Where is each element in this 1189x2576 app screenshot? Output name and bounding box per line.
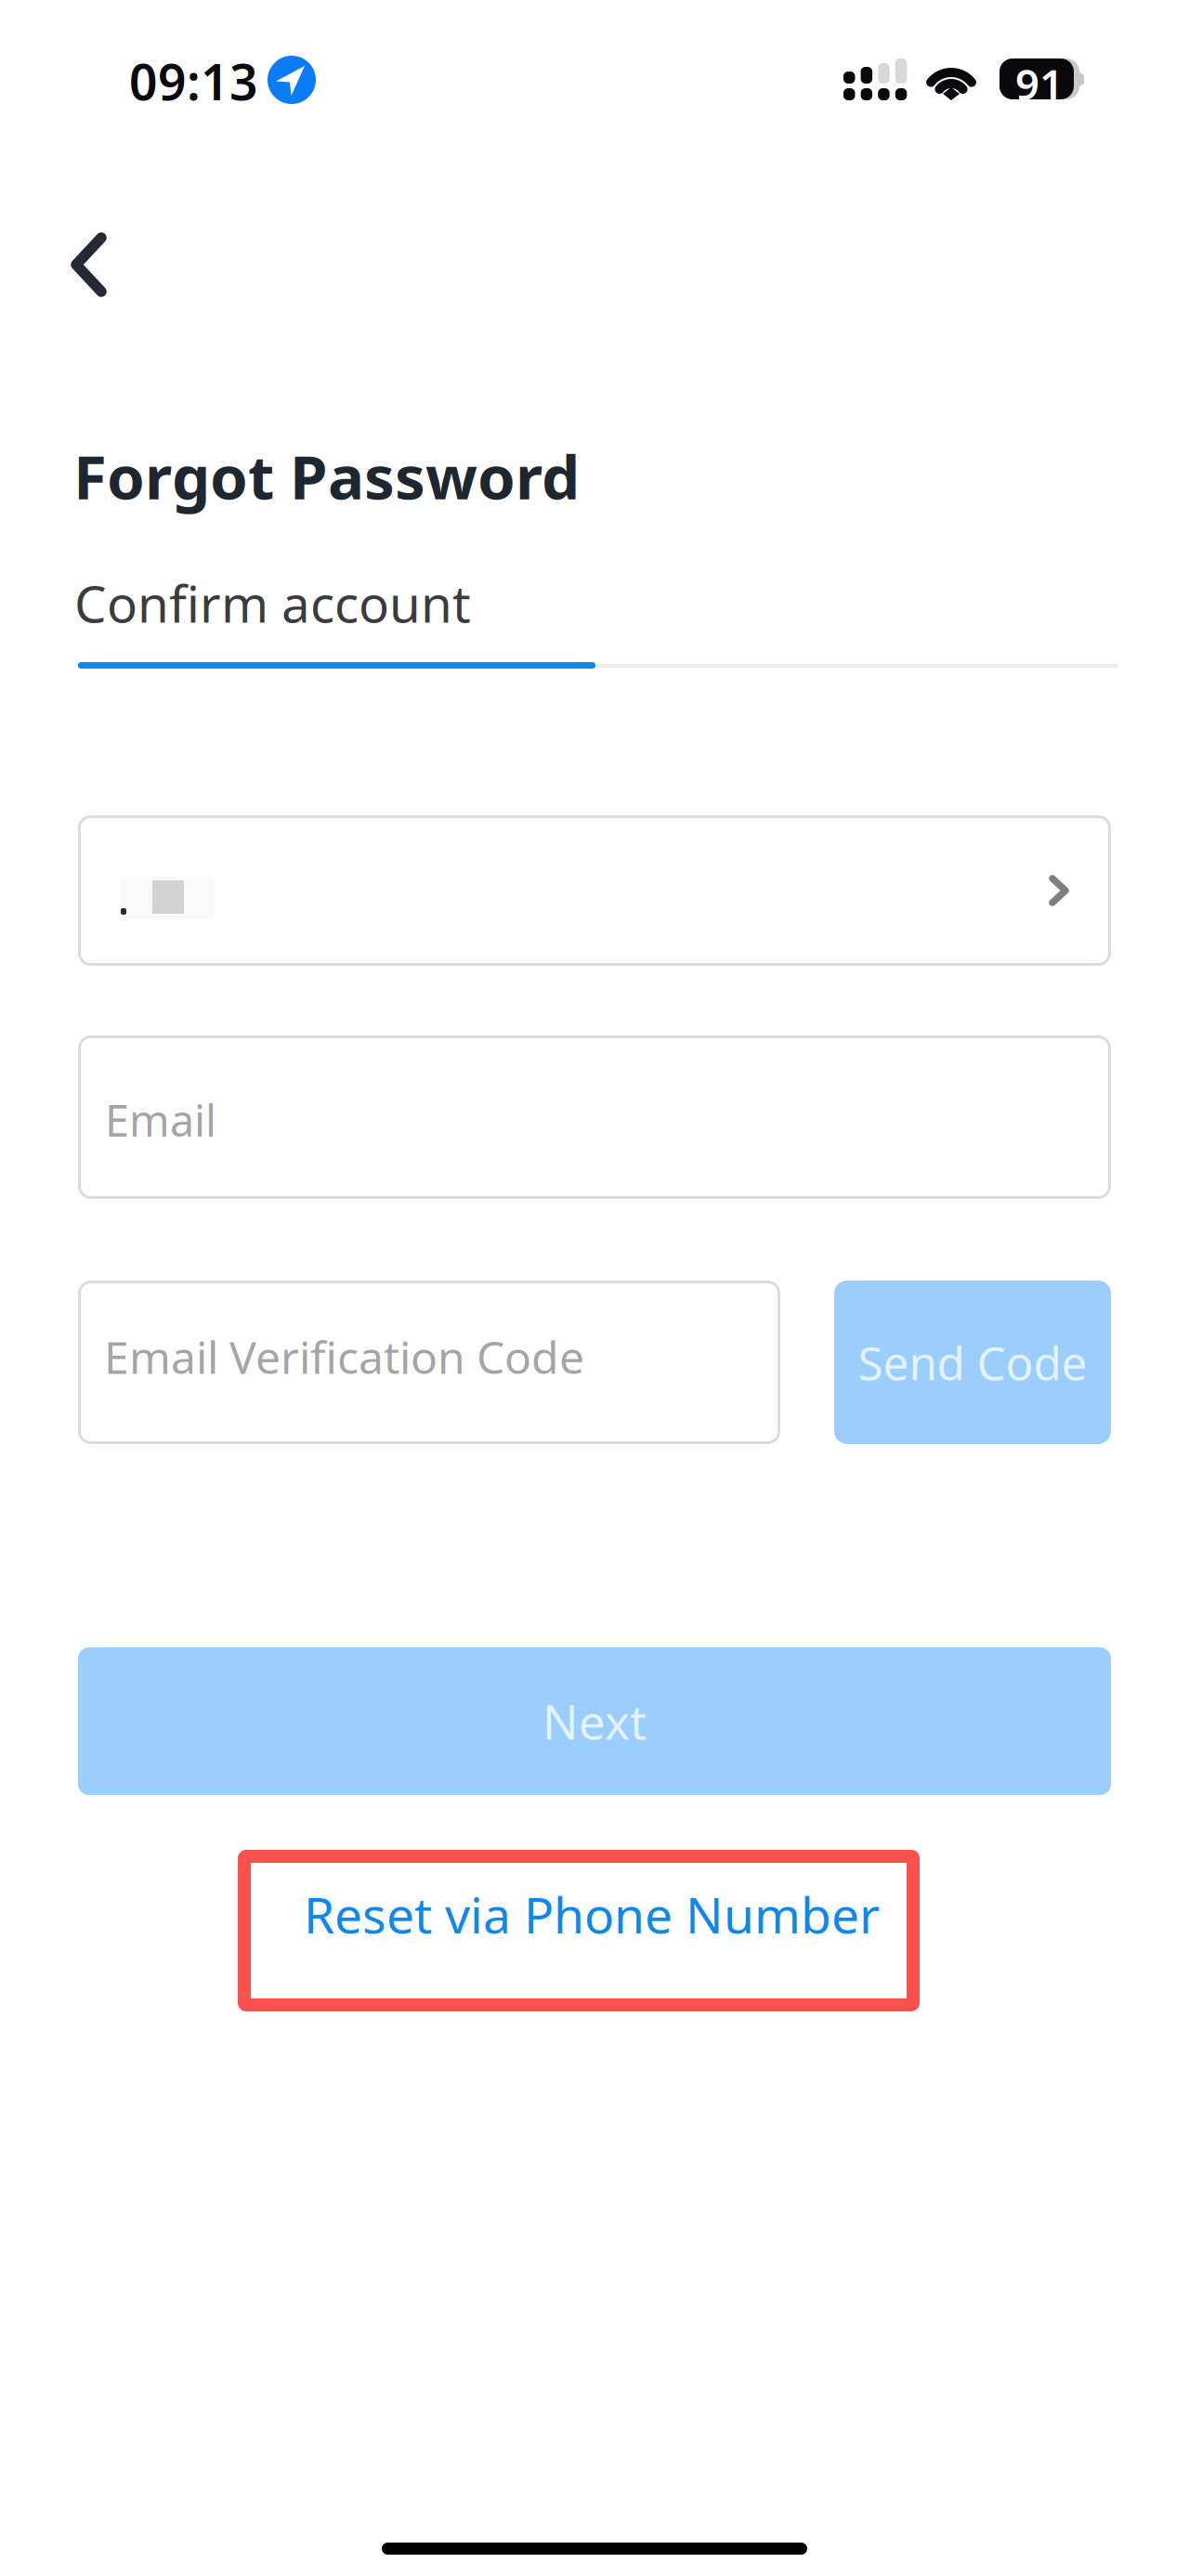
staticText: Forgot Password [73,436,580,516]
button[interactable]: Send Code [834,1281,1111,1444]
button[interactable]: Reset via Phone Number [238,1850,920,2011]
staticText: Reset via Phone Number [304,1881,880,1947]
staticText: Confirm account [74,569,471,637]
staticText: Send Code [858,1332,1087,1393]
staticText: Next [542,1690,647,1752]
staticText: 09:13 [129,48,258,114]
staticText: Email Verification Code [104,1327,584,1386]
button[interactable]: Next [78,1647,1111,1795]
button[interactable]: Back [29,203,151,326]
staticText: Email [105,1091,216,1149]
button[interactable]: Account [78,815,1111,966]
staticText: 91 [1015,56,1064,112]
